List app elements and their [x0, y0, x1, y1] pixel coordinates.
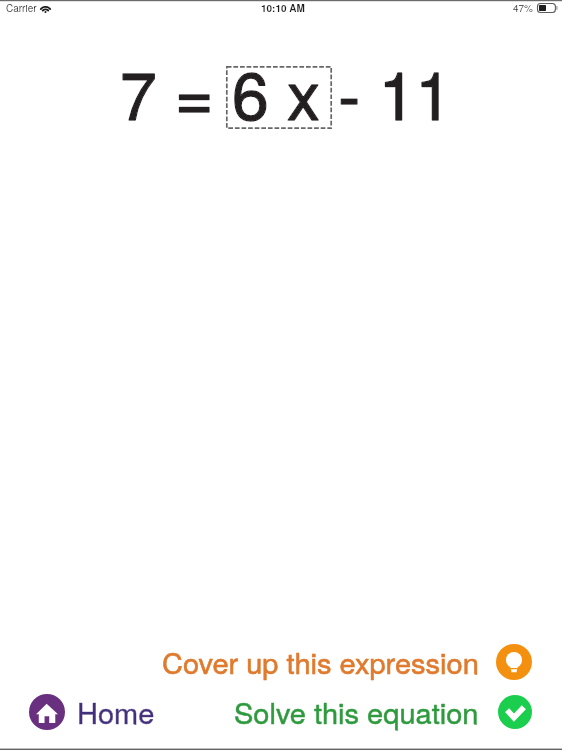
- other: Home: [29, 694, 65, 730]
- other: Wi-Fi: [39, 4, 52, 13]
- staticText: 47%: [513, 1, 534, 15]
- staticText: Solve this equation: [234, 691, 479, 733]
- staticText: Home: [77, 691, 155, 733]
- other: Hint: [496, 644, 532, 680]
- staticText: Solve this equation: [234, 691, 479, 733]
- staticText: Cover up this expression: [162, 641, 479, 683]
- other: Battery 47 percent: [537, 3, 558, 13]
- staticText: 10:10 AM: [261, 1, 305, 15]
- staticText: Home: [77, 691, 155, 733]
- button[interactable]: Cover up this expression: [162, 641, 532, 683]
- other: Solve: [498, 695, 532, 729]
- staticText: 7 = 6 x - 11: [120, 44, 453, 139]
- staticText: 7 = 6 x - 11: [120, 44, 453, 139]
- staticText: Carrier: [6, 1, 37, 15]
- button[interactable]: Solve this equation: [234, 691, 532, 733]
- staticText: Cover up this expression: [162, 641, 479, 683]
- button[interactable]: Home: [29, 691, 155, 733]
